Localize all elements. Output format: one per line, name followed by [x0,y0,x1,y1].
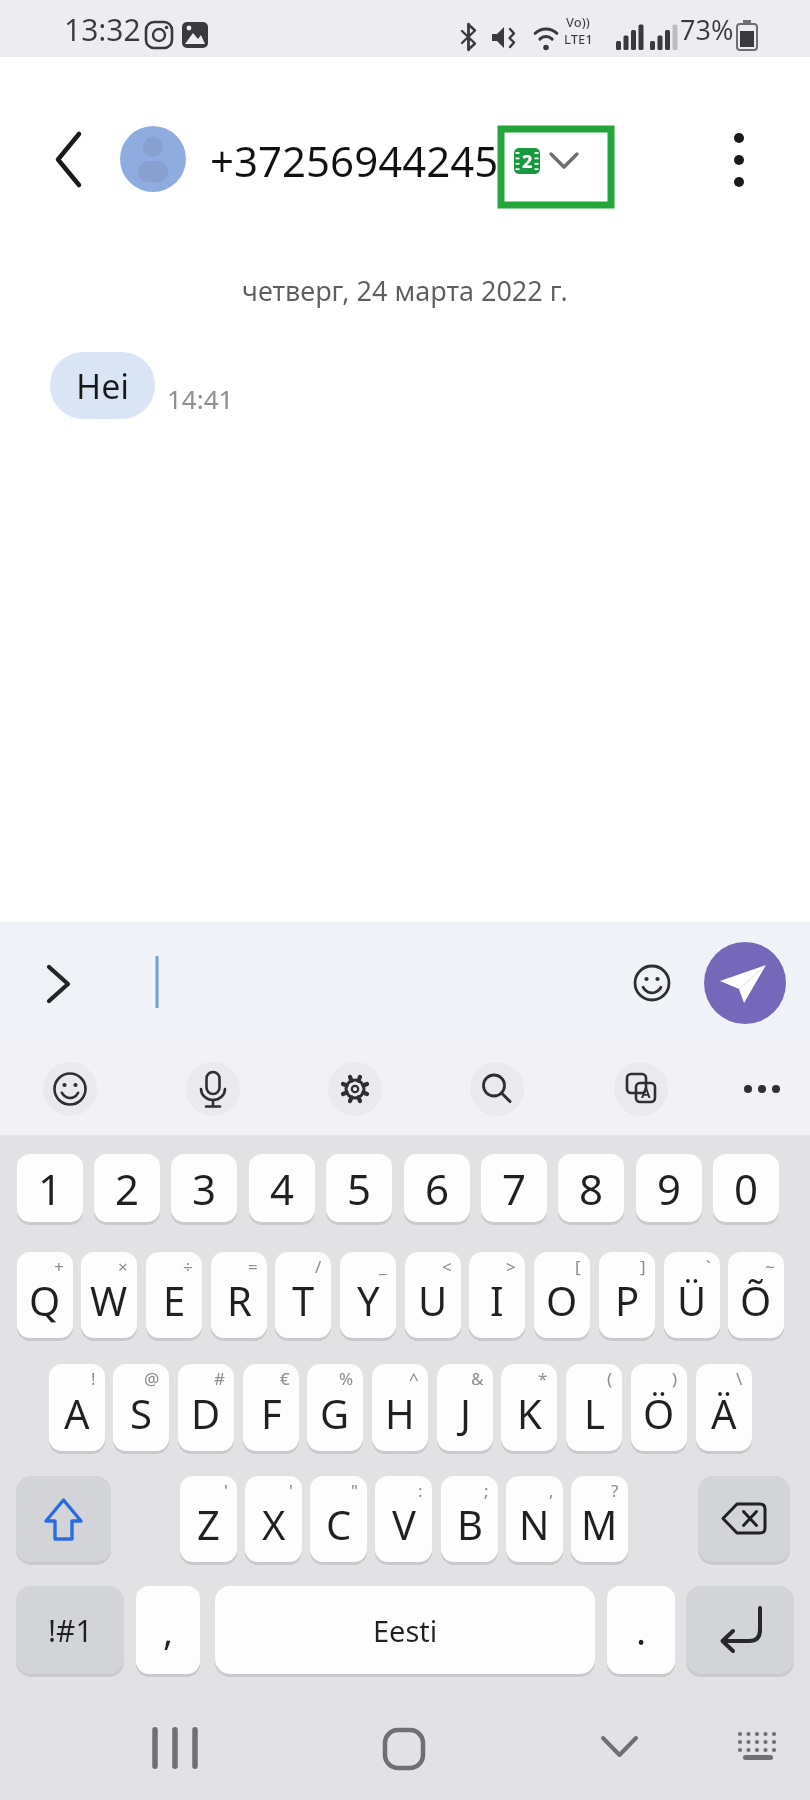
button[interactable]: B [441,1476,498,1562]
staticText: N [519,1497,550,1551]
button[interactable]: 5 [326,1154,392,1222]
staticText: 4 [270,1160,295,1217]
button[interactable] [686,1586,794,1674]
button[interactable]: Q [17,1252,73,1338]
button[interactable]: E [146,1252,202,1338]
staticText: M [581,1497,618,1551]
button[interactable] [186,1062,240,1116]
button[interactable]: A [49,1364,105,1451]
staticText: W [90,1273,128,1327]
button[interactable]: Y [340,1252,396,1338]
button[interactable]: 6 [404,1154,470,1222]
button[interactable]: N [506,1476,563,1562]
staticText: = [248,1255,258,1278]
button[interactable]: 9 [636,1154,702,1222]
staticText: C [326,1497,352,1551]
staticText: ; [484,1479,489,1502]
staticText: Vo)) [566,13,590,29]
button[interactable]: R [211,1252,267,1338]
button[interactable]: M [571,1476,628,1562]
staticText: 0 [734,1160,759,1217]
staticText: 73% [680,11,734,48]
button[interactable]: T [275,1252,331,1338]
staticText: ' [224,1479,228,1502]
button[interactable]: W [81,1252,137,1338]
button[interactable]: S [113,1364,169,1451]
button[interactable] [704,942,786,1024]
button[interactable]: 0 [713,1154,779,1222]
button[interactable]: 8 [558,1154,624,1222]
button[interactable]: 7 [481,1154,547,1222]
staticText: \ [736,1367,743,1390]
button[interactable] [725,1715,791,1781]
staticText: G [320,1386,350,1440]
button[interactable]: G [307,1364,363,1451]
staticText: _ [379,1255,387,1278]
staticText: A [64,1386,90,1440]
staticText: 1 [38,1160,63,1217]
staticText: Hei [76,363,130,409]
staticText: : [418,1479,423,1502]
staticText: ] [640,1255,646,1278]
button[interactable]: O [534,1252,590,1338]
staticText: < [442,1255,452,1278]
button[interactable] [16,1476,111,1562]
button[interactable] [736,1066,788,1112]
button[interactable]: F [243,1364,299,1451]
button[interactable] [586,1715,652,1781]
button[interactable]: !#1 [16,1586,124,1674]
button[interactable] [30,950,90,1016]
button[interactable]: 4 [249,1154,315,1222]
button[interactable]: Eesti [215,1586,595,1674]
button[interactable] [328,1062,382,1116]
button[interactable] [720,130,760,190]
button[interactable]: 2 [94,1154,160,1222]
button[interactable]: 3 [171,1154,237,1222]
staticText: K [517,1386,542,1440]
button[interactable] [145,1715,211,1781]
staticText: 14:41 [167,381,234,416]
staticText: Eesti [373,1611,438,1650]
button[interactable]: Ö [631,1364,687,1451]
button[interactable]: K [501,1364,557,1451]
button[interactable] [372,1715,438,1781]
button[interactable]: C [310,1476,367,1562]
button[interactable]: L [566,1364,622,1451]
staticText: ~ [765,1255,775,1278]
button[interactable]: . [607,1586,675,1674]
button[interactable]: U [405,1252,461,1338]
button[interactable] [470,1062,524,1116]
button[interactable]: X [245,1476,302,1562]
staticText: 2 [522,149,533,174]
button[interactable] [620,950,686,1016]
button[interactable] [120,126,186,192]
button[interactable] [614,1062,668,1116]
staticText: 3 [192,1160,217,1217]
staticText: @ [144,1367,160,1390]
button[interactable] [698,1476,790,1562]
button[interactable] [43,1062,97,1116]
staticText: " [351,1479,358,1502]
staticText: , [549,1479,554,1502]
staticText: I [490,1273,504,1327]
staticText: / [315,1255,322,1278]
button[interactable]: P [599,1252,655,1338]
button[interactable]: Ä [696,1364,752,1451]
button[interactable]: Ü [664,1252,720,1338]
staticText: Õ [740,1273,772,1327]
button[interactable]: Hei [50,352,155,419]
button[interactable]: 1 [17,1154,83,1222]
button[interactable] [40,130,90,190]
staticText: H [385,1386,415,1440]
button[interactable]: Z [180,1476,237,1562]
staticText: E [163,1273,186,1327]
button[interactable]: H [372,1364,428,1451]
button[interactable]: J [437,1364,493,1451]
button[interactable]: Õ [728,1252,784,1338]
button[interactable]: D [178,1364,234,1451]
button[interactable]: I [469,1252,525,1338]
staticText: € [280,1367,290,1390]
staticText: 5 [347,1160,372,1217]
button[interactable]: , [136,1586,200,1674]
button[interactable]: V [375,1476,432,1562]
